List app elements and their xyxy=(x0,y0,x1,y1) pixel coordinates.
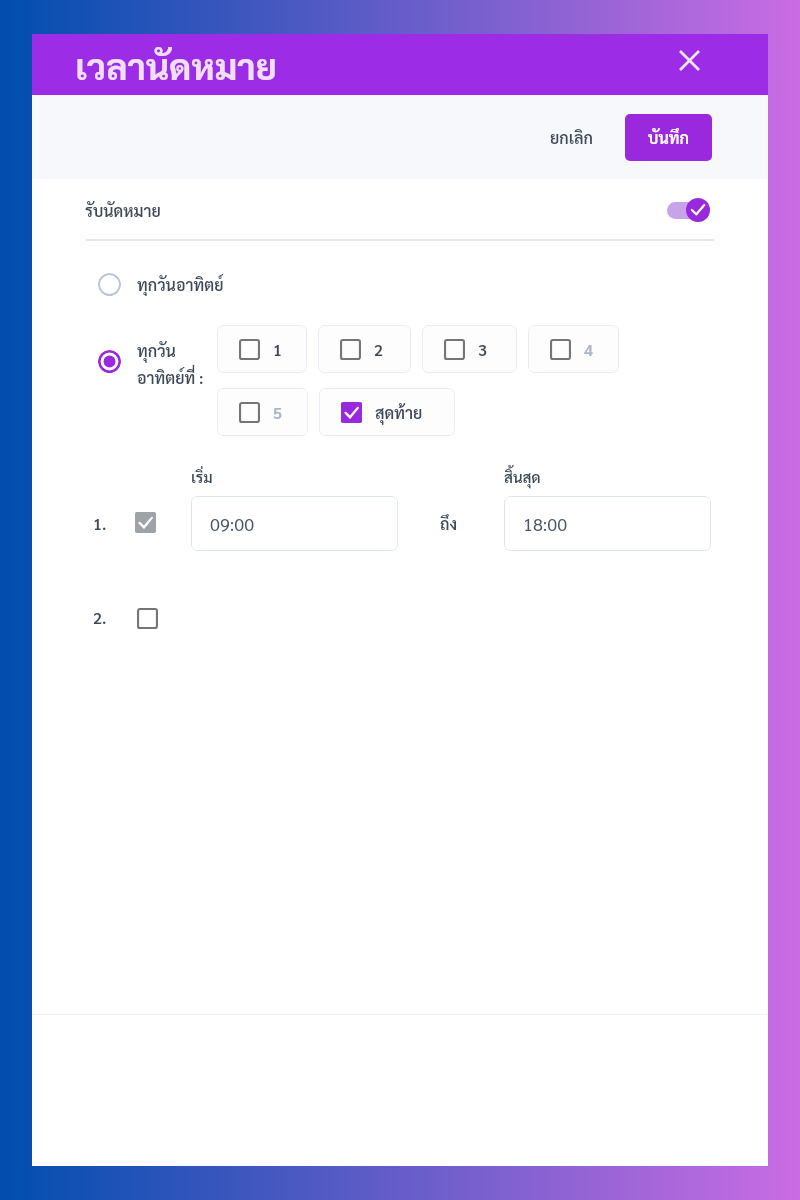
staticText: สุดท้าย xyxy=(375,402,423,423)
staticText: ทุกวันอาทิตย์ xyxy=(137,274,224,295)
staticText: 1 xyxy=(273,339,282,360)
button[interactable]: Close xyxy=(673,44,705,76)
staticText: 4 xyxy=(584,339,593,360)
button[interactable]: 18:00 xyxy=(504,496,711,551)
button[interactable]: Selected option xyxy=(98,350,121,373)
staticText: ยกเลิก xyxy=(550,127,593,148)
button[interactable]: สุดท้าย xyxy=(319,388,455,436)
staticText: บันทึก xyxy=(648,127,689,148)
button[interactable]: ยกเลิก xyxy=(540,119,603,156)
staticText: เวลานัดหมาย xyxy=(75,42,277,89)
staticText: รับนัดหมาย xyxy=(85,200,161,221)
button[interactable]: 4 xyxy=(528,325,619,373)
button[interactable]: บันทึก xyxy=(625,114,712,161)
button[interactable]: 3 xyxy=(422,325,517,373)
staticText: 2. xyxy=(93,607,107,628)
button[interactable]: 1 xyxy=(217,325,307,373)
button[interactable]: 09:00 xyxy=(191,496,398,551)
staticText: 3 xyxy=(478,339,487,360)
button[interactable]: Option xyxy=(98,273,224,296)
staticText: 1. xyxy=(93,513,107,534)
button[interactable]: 5 xyxy=(217,388,308,436)
staticText: สิ้นสุด xyxy=(504,467,541,486)
button[interactable]: 2 xyxy=(318,325,411,373)
staticText: ทุกวัน อาทิตย์ที่ : xyxy=(137,340,219,388)
staticText: 09:00 xyxy=(210,512,255,535)
staticText: 5 xyxy=(273,402,282,423)
staticText: ถึง xyxy=(440,513,458,534)
staticText: 18:00 xyxy=(523,512,568,535)
button[interactable]: Option xyxy=(98,273,121,296)
staticText: 2 xyxy=(374,339,383,360)
button[interactable]: Accept appointments toggle xyxy=(666,197,712,223)
staticText: เริ่ม xyxy=(191,467,213,486)
